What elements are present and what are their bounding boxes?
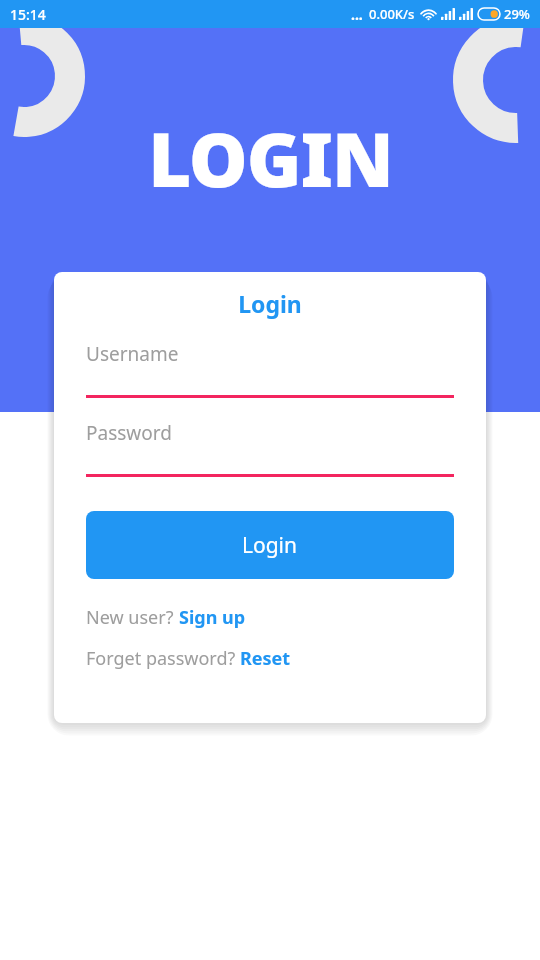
button[interactable]: Login bbox=[86, 511, 454, 579]
staticText: Password bbox=[86, 420, 172, 446]
staticText: Login bbox=[242, 531, 298, 560]
staticText: Reset bbox=[240, 646, 291, 671]
button[interactable]: Forget password? bbox=[86, 646, 291, 671]
staticText: LOGIN bbox=[148, 108, 393, 209]
button[interactable]: New user? bbox=[86, 605, 246, 630]
staticText: Username bbox=[86, 341, 179, 367]
staticText: 15:14 bbox=[10, 5, 46, 24]
staticText: ... bbox=[351, 5, 363, 24]
staticText: Sign up bbox=[179, 605, 246, 630]
staticText: Forget password? bbox=[86, 646, 240, 671]
staticText: New user? bbox=[86, 605, 179, 630]
staticText: 0.00K/s bbox=[369, 5, 415, 23]
staticText: 29% bbox=[504, 5, 530, 23]
staticText: Login bbox=[86, 288, 454, 319]
